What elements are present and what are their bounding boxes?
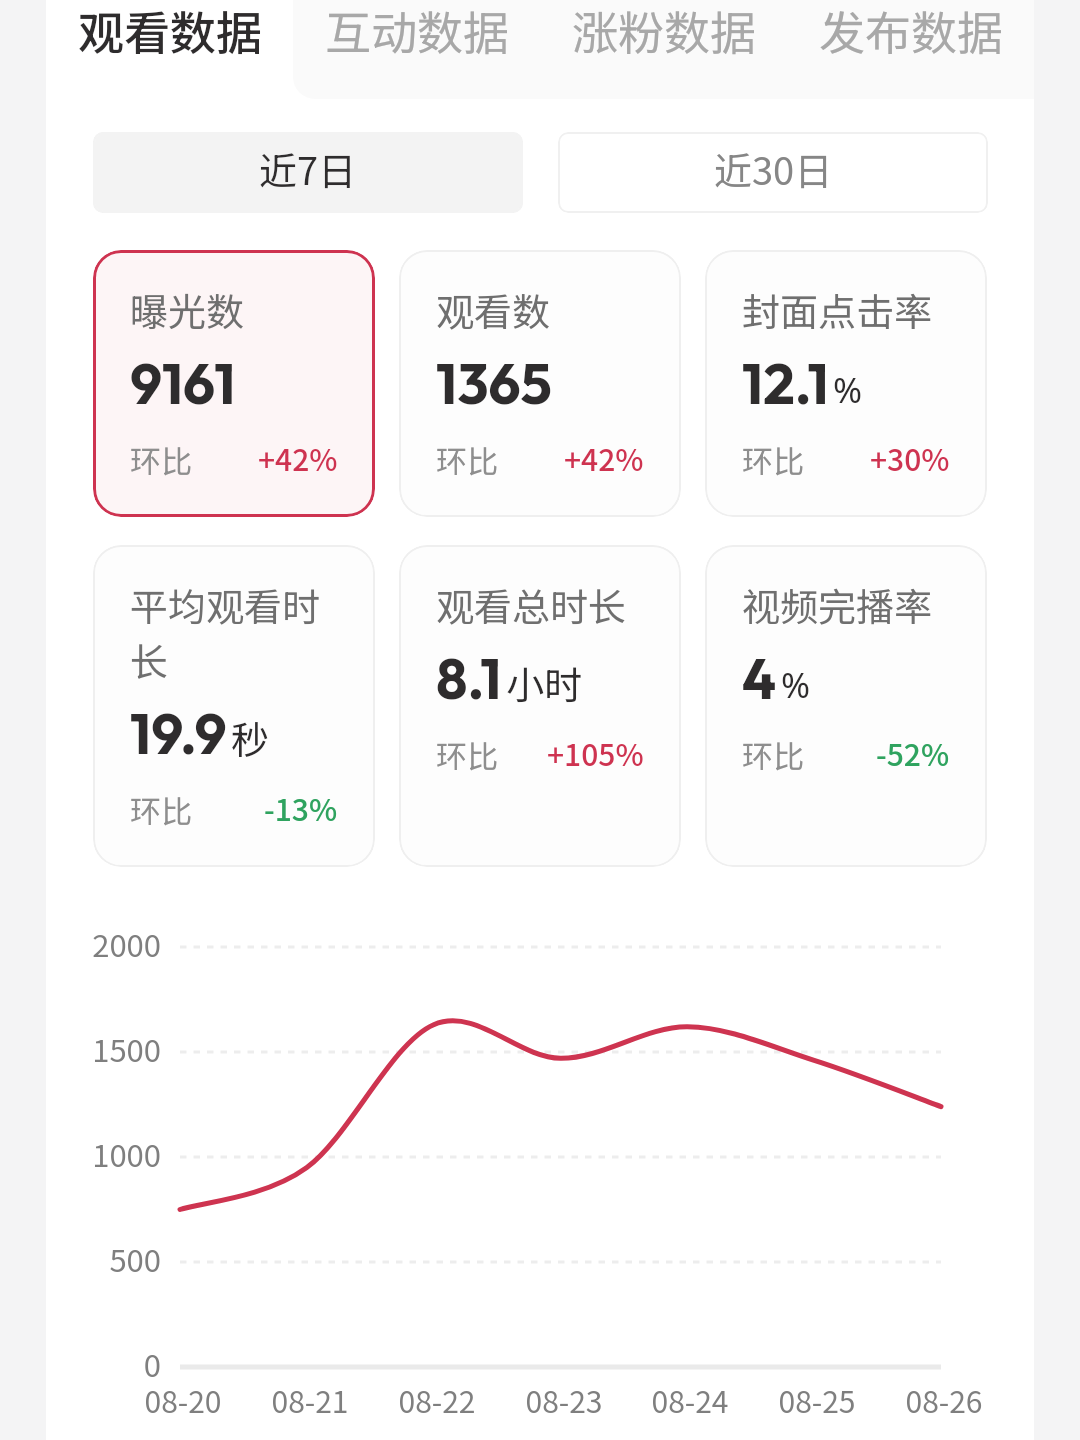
button[interactable]: 观看总时长 — [399, 545, 681, 867]
staticText: 观看数据 — [78, 0, 262, 64]
staticText: +30% — [870, 436, 950, 479]
staticText: 秒 — [231, 710, 270, 765]
staticText: 08-21 — [250, 1378, 370, 1421]
staticText: 8.1 — [436, 643, 502, 714]
staticText: 环比 — [130, 787, 192, 832]
staticText: % — [781, 661, 811, 709]
staticText: 观看总时长 — [436, 577, 627, 632]
staticText: 08-24 — [630, 1378, 750, 1421]
button[interactable]: 封面点击率 — [705, 250, 987, 517]
button[interactable]: 视频完播率 — [705, 545, 987, 867]
staticText: 观看数 — [436, 282, 551, 337]
button[interactable]: 平均观看时长 — [93, 545, 375, 867]
button[interactable]: 发布数据 — [787, 0, 1034, 99]
staticText: 08-20 — [123, 1378, 243, 1421]
staticText: 发布数据 — [819, 0, 1003, 64]
staticText: 环比 — [742, 437, 804, 482]
staticText: 小时 — [506, 655, 583, 710]
staticText: -13% — [264, 786, 338, 829]
staticText: 环比 — [436, 732, 498, 777]
staticText: 平均观看时长 — [130, 577, 338, 687]
staticText: 08-23 — [504, 1378, 624, 1421]
staticText: % — [833, 366, 863, 414]
staticText: 19.9 — [130, 698, 227, 769]
staticText: 1000 — [81, 1131, 161, 1176]
staticText: +42% — [564, 436, 644, 479]
staticText: 0 — [81, 1341, 161, 1386]
staticText: 环比 — [436, 437, 498, 482]
staticText: 涨粉数据 — [572, 0, 756, 64]
button[interactable]: 互动数据 — [293, 0, 540, 99]
staticText: 08-22 — [377, 1378, 497, 1421]
staticText: 环比 — [130, 437, 192, 482]
button[interactable]: 近30日 — [558, 132, 988, 213]
staticText: 近30日 — [714, 141, 833, 196]
staticText: 08-26 — [884, 1378, 1004, 1421]
staticText: +105% — [547, 731, 644, 774]
button[interactable]: 近7日 — [93, 132, 523, 213]
staticText: 08-25 — [757, 1378, 877, 1421]
staticText: -52% — [876, 731, 950, 774]
button[interactable]: 曝光数 — [93, 250, 375, 517]
staticText: 4 — [742, 643, 777, 714]
button[interactable]: 涨粉数据 — [540, 0, 787, 99]
button[interactable]: 观看数据 — [46, 0, 293, 99]
staticText: +42% — [258, 436, 338, 479]
staticText: 2000 — [81, 921, 161, 966]
staticText: 互动数据 — [325, 0, 509, 64]
button[interactable]: 观看数 — [399, 250, 681, 517]
staticText: 曝光数 — [130, 282, 245, 337]
staticText: 9161 — [130, 348, 236, 419]
staticText: 封面点击率 — [742, 282, 933, 337]
staticText: 环比 — [742, 732, 804, 777]
staticText: 1500 — [81, 1026, 161, 1071]
staticText: 视频完播率 — [742, 577, 933, 632]
staticText: 1365 — [436, 348, 552, 419]
staticText: 12.1 — [742, 348, 829, 419]
staticText: 近7日 — [259, 141, 357, 196]
staticText: 500 — [81, 1236, 161, 1281]
